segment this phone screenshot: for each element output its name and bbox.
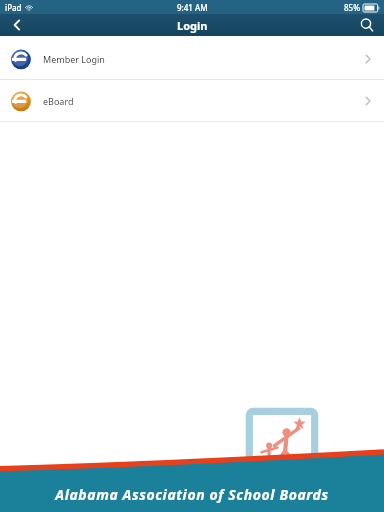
button[interactable]: Search: [350, 14, 384, 36]
button[interactable]: Back: [0, 14, 34, 36]
button[interactable]: eBoard: [0, 80, 384, 121]
staticText: 9:41 AM: [177, 2, 208, 13]
button[interactable]: Member Login: [0, 38, 384, 79]
staticText: iPad: [5, 2, 22, 13]
staticText: Login: [177, 18, 208, 33]
staticText: Alabama Association of School Boards: [55, 485, 329, 504]
staticText: 85%: [344, 2, 360, 13]
staticText: eBoard: [43, 95, 74, 107]
staticText: Member Login: [43, 53, 105, 65]
